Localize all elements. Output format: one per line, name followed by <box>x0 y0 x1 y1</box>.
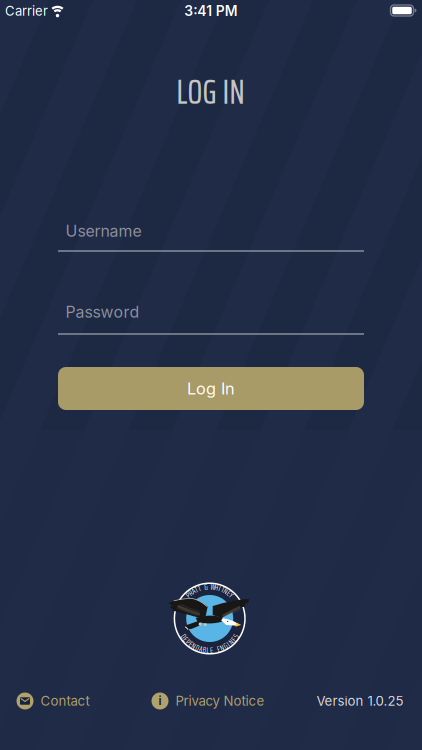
staticText: P <box>187 635 190 648</box>
staticText: PM <box>216 3 238 19</box>
staticText: R <box>189 587 192 599</box>
staticText: N <box>224 585 228 598</box>
staticText: & <box>204 580 208 593</box>
staticText: E <box>184 633 187 646</box>
staticText: P <box>186 589 189 602</box>
button[interactable]: Password <box>58 301 364 323</box>
staticText: T <box>221 583 224 596</box>
staticText: L <box>206 644 209 657</box>
button[interactable]: Log In <box>58 367 364 410</box>
staticText: B <box>203 643 206 656</box>
staticText: E <box>232 633 235 646</box>
staticText: Privacy Notice <box>175 693 264 709</box>
staticText: A <box>192 585 195 598</box>
staticText: N <box>229 635 233 648</box>
staticText: H <box>214 581 218 594</box>
staticText: T <box>198 582 201 595</box>
staticText: 3:41 <box>184 3 212 19</box>
staticText: W <box>211 580 216 593</box>
staticText: D <box>196 641 199 654</box>
staticText: T <box>195 583 198 596</box>
staticText: Contact <box>40 693 89 709</box>
staticText: E <box>217 643 220 655</box>
staticText: S <box>235 630 238 643</box>
staticText: LOG IN <box>176 65 244 119</box>
staticText: D <box>182 630 185 643</box>
staticText: E <box>210 644 213 657</box>
staticText: E <box>227 587 230 599</box>
staticText: N <box>220 641 224 654</box>
staticText <box>215 643 216 656</box>
staticText: E <box>189 638 192 650</box>
staticText: Password <box>65 302 139 322</box>
staticText: I <box>219 582 221 595</box>
button[interactable]: Contact <box>16 692 89 709</box>
button[interactable]: i <box>151 692 264 709</box>
staticText: Y <box>230 589 233 602</box>
staticText <box>209 580 210 593</box>
staticText: Carrier <box>5 3 48 19</box>
staticText: Log In <box>187 379 235 398</box>
staticText <box>202 581 203 594</box>
staticText: I <box>227 638 229 650</box>
staticText: Version 1.0.25 <box>316 693 403 709</box>
staticText: G <box>224 640 227 652</box>
staticText: Username <box>65 221 141 241</box>
button[interactable]: Username <box>58 220 364 242</box>
staticText: N <box>192 640 196 652</box>
staticText: A <box>199 643 202 655</box>
staticText: i <box>158 694 161 708</box>
